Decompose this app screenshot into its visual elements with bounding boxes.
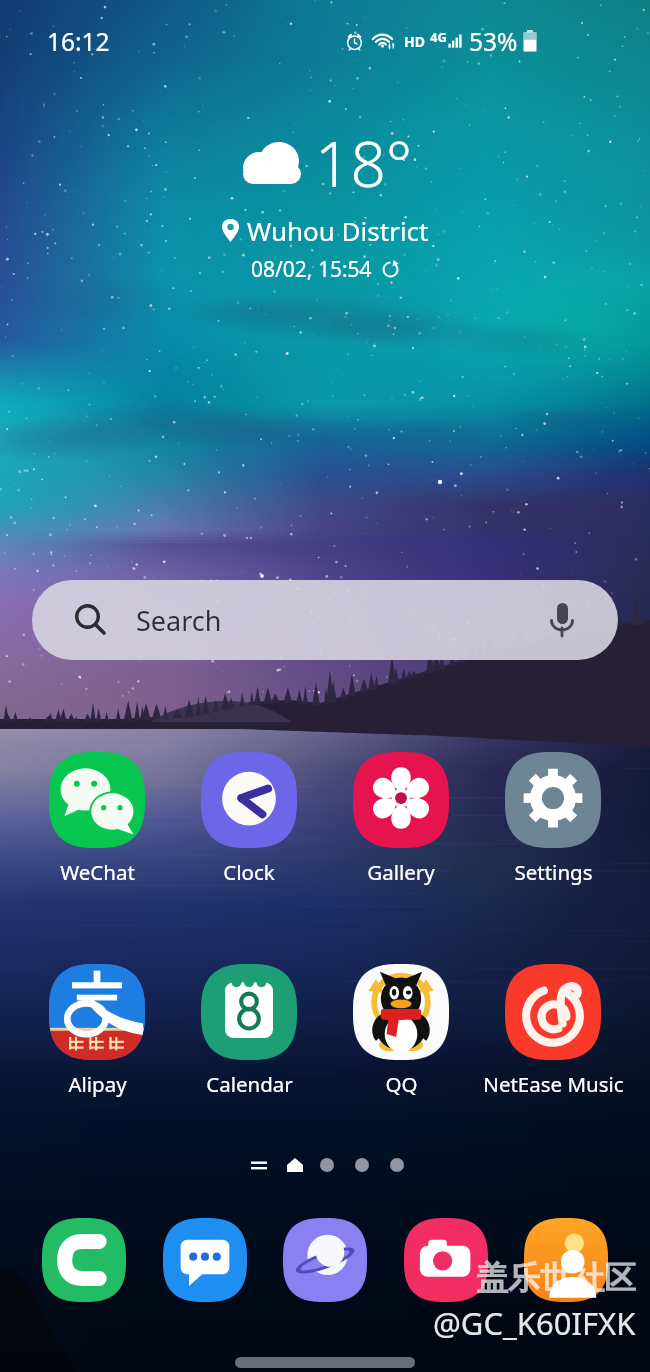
other: Voice search [548,601,576,639]
staticText: QQ [385,1070,418,1098]
button[interactable]: App list [246,1152,272,1178]
staticText: Search [136,602,222,639]
button[interactable] [390,1158,404,1172]
other: Refresh [381,260,400,279]
staticText: Wuhou District [247,213,429,248]
staticText: WeChat [60,858,135,886]
staticText: Settings [514,858,593,886]
staticText: 16:12 [47,25,110,58]
staticText: 18° [315,121,413,205]
staticText: 53% [469,25,518,58]
button[interactable]: NetEase Music [477,964,629,1098]
button[interactable]: Internet [283,1218,367,1302]
button[interactable] [355,1158,369,1172]
button[interactable]: Clock [173,752,325,886]
button[interactable]: Gallery [325,752,477,886]
button[interactable]: Alipay [21,964,173,1098]
button[interactable]: Camera [404,1218,488,1302]
staticText: Gallery [367,858,435,886]
button[interactable]: Contacts [524,1218,608,1302]
staticText: Clock [223,858,275,886]
staticText: HD [404,32,425,51]
staticText: 盖乐世社区 [476,1258,636,1298]
button[interactable]: Phone [42,1218,126,1302]
button[interactable]: 18° [0,121,650,284]
button[interactable]: Messages [163,1218,247,1302]
staticText: Alipay [68,1070,127,1098]
button[interactable]: WeChat [21,752,173,886]
staticText: @GC_K60IFXK [433,1302,636,1344]
staticText: 08/02, 15:54 [251,255,372,284]
button[interactable] [320,1158,334,1172]
staticText: Calendar [206,1070,293,1098]
staticText: 4G [430,28,447,46]
button[interactable]: QQ [325,964,477,1098]
staticText: NetEase Music [483,1070,624,1098]
button[interactable]: Search [32,580,618,660]
button[interactable]: Settings [477,752,629,886]
button[interactable]: Calendar [173,964,325,1098]
button[interactable]: Home [282,1152,308,1178]
